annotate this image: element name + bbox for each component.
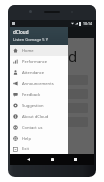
staticText: Contact us: [22, 125, 43, 131]
button[interactable]: Attendance: [10, 67, 68, 78]
button[interactable]: About dCloud: [10, 111, 68, 122]
staticText: Listen Gomage 5 Y: [13, 37, 48, 42]
staticText: dCloud: [13, 29, 29, 35]
button[interactable]: Suggestion: [10, 100, 68, 111]
button[interactable]: Home: [10, 45, 68, 56]
button[interactable]: Contact us: [10, 122, 68, 133]
button[interactable]: Exit: [10, 144, 68, 154]
staticText: Exit: [22, 146, 29, 152]
staticText: About dCloud: [22, 114, 49, 120]
staticText: 10:14: [83, 21, 92, 26]
button[interactable]: [16, 103, 88, 113]
staticText: Performance: [22, 59, 47, 65]
staticText: Home: [22, 48, 34, 54]
staticText: Announcements: [22, 81, 54, 87]
button[interactable]: dCloud: [10, 27, 68, 45]
staticText: Attendance: [22, 70, 45, 76]
button[interactable]: Announcements: [10, 78, 68, 89]
button[interactable]: Feedback: [10, 89, 68, 100]
button[interactable]: [16, 89, 88, 99]
button[interactable]: Recent apps: [71, 155, 80, 164]
staticText: Feedback: [22, 92, 41, 98]
staticText: Suggestion: [22, 103, 44, 109]
button[interactable]: Performance: [10, 56, 68, 67]
button[interactable]: [16, 117, 88, 127]
staticText: Help: [22, 136, 31, 142]
staticText: dCloud: [27, 46, 78, 66]
button[interactable]: Help: [10, 133, 68, 144]
button[interactable]: Home: [48, 155, 57, 164]
button[interactable]: Attendance: [16, 75, 88, 85]
button[interactable]: Back: [24, 155, 33, 164]
